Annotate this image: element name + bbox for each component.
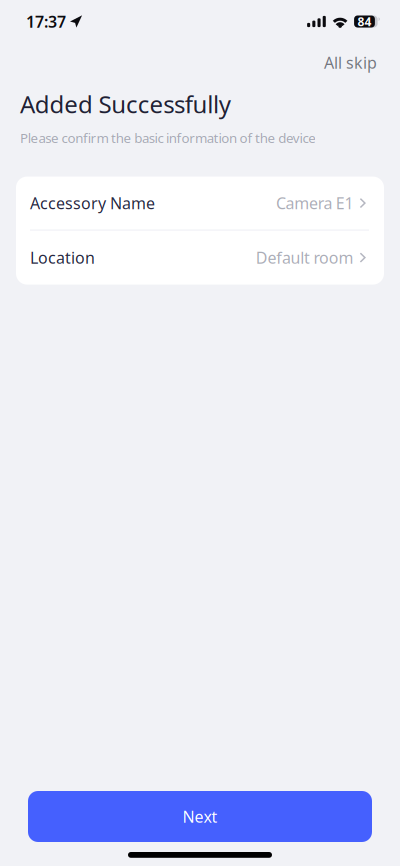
staticText: Please confirm the basic information of … xyxy=(20,129,316,147)
staticText: Camera E1 xyxy=(276,192,353,214)
staticText: Added Successfully xyxy=(20,88,231,120)
button[interactable]: All skip xyxy=(316,47,385,78)
staticText: Accessory Name xyxy=(30,192,155,214)
staticText: All skip xyxy=(324,52,377,73)
staticText: 17:37 xyxy=(26,11,66,32)
staticText: Default room xyxy=(256,247,353,268)
button[interactable]: Accessory Name xyxy=(16,177,384,230)
button[interactable]: Next xyxy=(28,791,372,842)
staticText: Location xyxy=(30,247,95,268)
button[interactable]: Location xyxy=(16,231,384,285)
staticText: Next xyxy=(182,806,217,827)
staticText: 84 xyxy=(357,13,371,29)
